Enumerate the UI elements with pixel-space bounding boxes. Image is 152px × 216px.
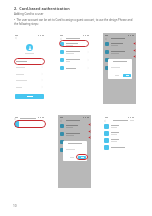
button[interactable] (104, 144, 135, 151)
button[interactable] (104, 123, 135, 130)
button[interactable] (60, 130, 89, 138)
button[interactable] (14, 120, 46, 128)
button[interactable] (105, 56, 134, 64)
button[interactable] (60, 48, 89, 56)
staticText: 10 (13, 204, 17, 208)
staticText: • The user account can be set to Card to… (14, 18, 137, 26)
button[interactable] (123, 74, 131, 77)
button[interactable] (78, 156, 86, 159)
button[interactable] (60, 122, 89, 130)
button[interactable] (60, 146, 89, 154)
button[interactable] (60, 40, 89, 48)
button[interactable] (105, 40, 134, 48)
button[interactable] (60, 56, 89, 64)
staticText: 2. Card-based authentication (14, 6, 70, 11)
button[interactable] (16, 64, 43, 70)
button[interactable] (14, 58, 45, 65)
button[interactable] (59, 40, 89, 47)
button[interactable] (16, 58, 43, 64)
button[interactable] (60, 64, 89, 72)
button[interactable] (16, 84, 43, 90)
staticText: Adding Card to a user (14, 12, 44, 16)
button[interactable] (16, 77, 43, 83)
button[interactable] (15, 94, 44, 99)
button[interactable] (76, 154, 88, 160)
button[interactable] (104, 130, 135, 137)
button[interactable] (105, 64, 134, 72)
button[interactable] (60, 138, 89, 146)
button[interactable] (104, 137, 135, 144)
button[interactable] (16, 71, 43, 77)
button[interactable] (105, 48, 134, 56)
